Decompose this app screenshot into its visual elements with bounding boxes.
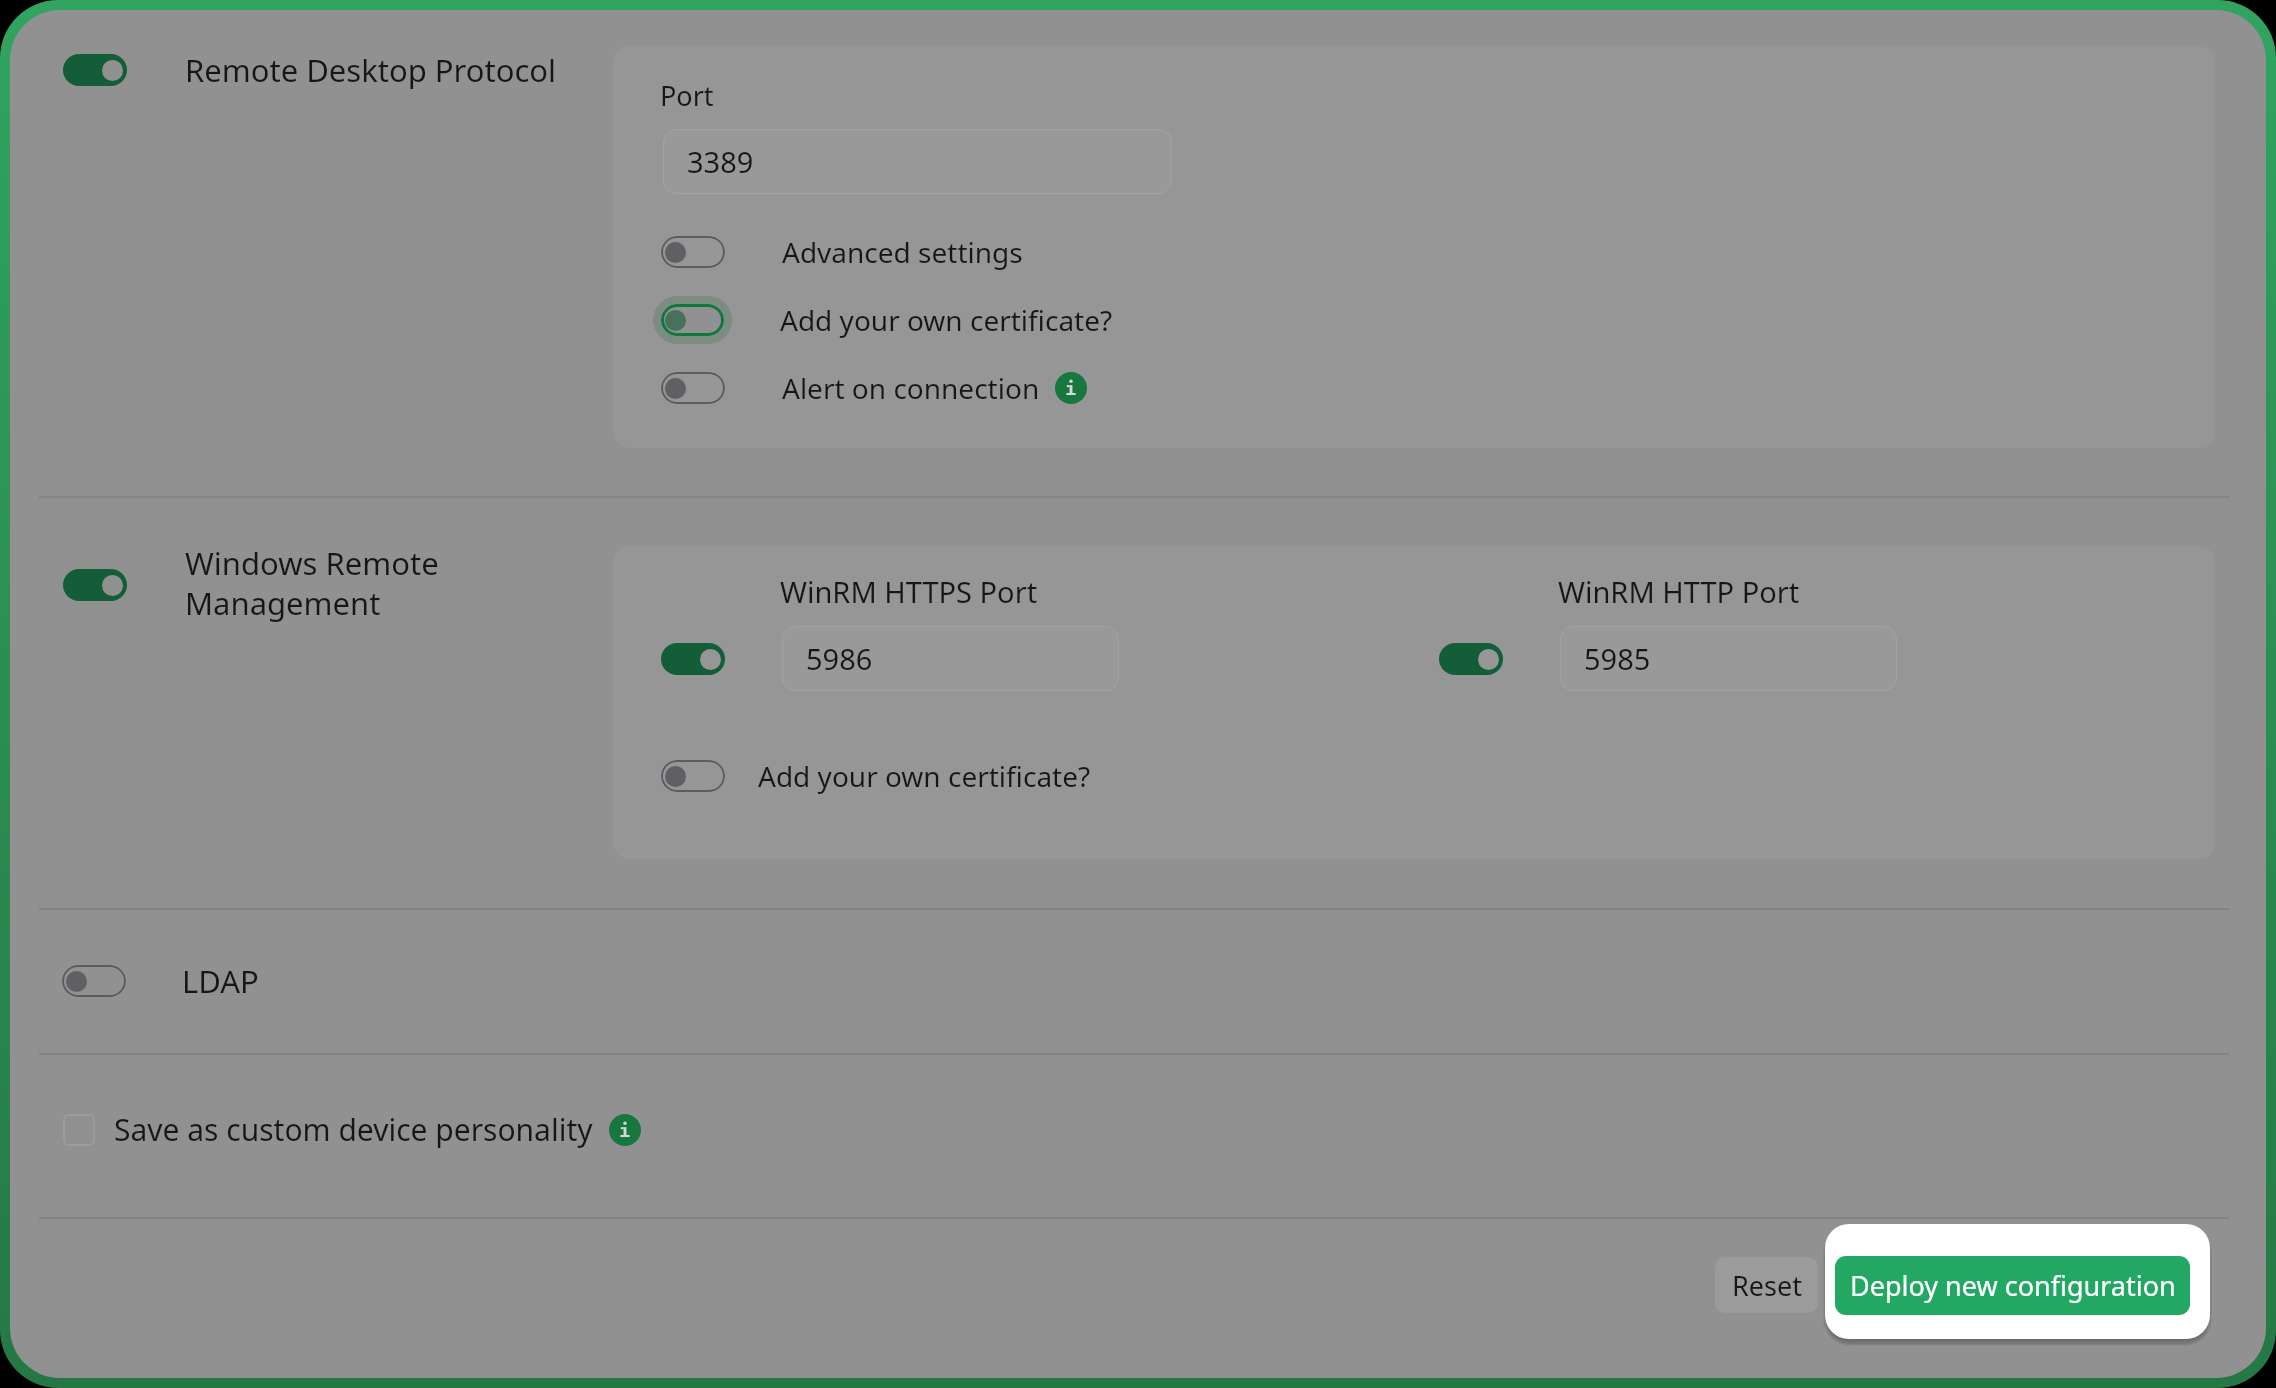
button[interactable]: Add your own certificate: [661, 760, 725, 792]
button[interactable]: Save as custom device personality: [63, 1114, 95, 1146]
staticText: Windows Remote: [185, 542, 439, 584]
button[interactable]: Alert on connection: [661, 372, 725, 404]
button[interactable]: Add your own certificate: [653, 296, 732, 344]
staticText: Alert on connection: [782, 369, 1040, 407]
staticText: Port: [660, 77, 714, 114]
button[interactable]: Remote Desktop Protocol: [63, 54, 127, 86]
staticText: Management: [185, 582, 381, 624]
staticText: 5985: [1584, 639, 1651, 678]
button[interactable]: 3389: [663, 129, 1172, 194]
staticText: Advanced settings: [782, 233, 1023, 271]
staticText: Save as custom device personality: [114, 1109, 593, 1150]
button[interactable]: 5986: [782, 626, 1119, 691]
staticText: WinRM HTTPS Port: [780, 572, 1038, 611]
staticText: Deploy new configuration: [1850, 1267, 2176, 1304]
staticText: Remote Desktop Protocol: [185, 49, 557, 91]
staticText: WinRM HTTP Port: [1558, 572, 1800, 611]
staticText: 3389: [687, 142, 754, 181]
staticText: Reset: [1732, 1267, 1802, 1304]
button[interactable]: Enable WinRM HTTPS: [661, 643, 725, 675]
button[interactable]: More information: [609, 1114, 641, 1146]
button[interactable]: Advanced settings: [661, 236, 725, 268]
staticText: 5986: [806, 639, 873, 678]
staticText: Add your own certificate?: [780, 301, 1113, 339]
button[interactable]: 5985: [1560, 626, 1897, 691]
button[interactable]: Windows Remote Management: [63, 569, 127, 601]
button[interactable]: Reset: [1715, 1257, 1818, 1313]
button[interactable]: Enable WinRM HTTP: [1439, 643, 1503, 675]
staticText: Add your own certificate?: [758, 757, 1091, 795]
button[interactable]: LDAP: [62, 965, 126, 997]
button[interactable]: More information: [1055, 372, 1087, 404]
staticText: LDAP: [182, 960, 259, 1002]
button[interactable]: Deploy new configuration: [1835, 1256, 2190, 1315]
